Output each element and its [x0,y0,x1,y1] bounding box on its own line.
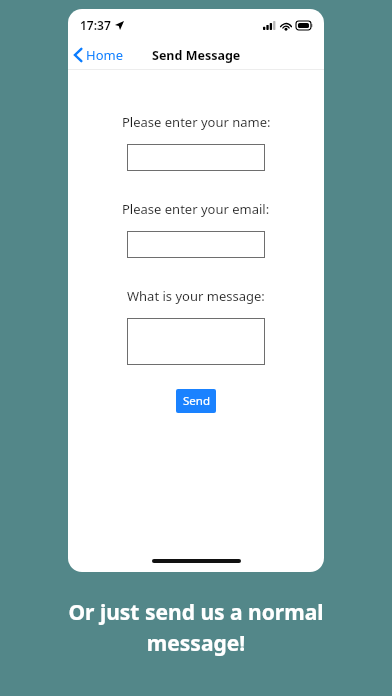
button[interactable] [127,231,265,258]
staticText: What is your message: [127,287,265,305]
staticText: Home [86,46,123,64]
staticText: Please enter your email: [122,200,270,218]
staticText: Send [183,393,210,409]
staticText: Send Message [152,47,241,64]
button[interactable]: Home [68,42,131,68]
staticText: Please enter your name: [122,113,271,131]
staticText: Or just send us a normal message! [30,598,362,657]
button[interactable] [127,144,265,171]
button[interactable] [127,318,265,365]
staticText: 17:37 [80,17,111,33]
button[interactable]: Send [176,389,216,413]
